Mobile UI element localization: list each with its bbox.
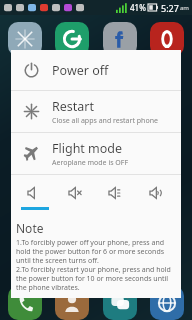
staticText: Restart bbox=[52, 98, 95, 115]
button[interactable]: GRID bbox=[8, 22, 42, 56]
staticText: Note bbox=[16, 220, 44, 236]
staticText: 5:27 bbox=[161, 2, 179, 14]
button[interactable]: F bbox=[103, 22, 137, 56]
staticText: 1.To forcibly power off your phone, pres… bbox=[16, 238, 176, 265]
staticText: Close all apps and restart phone bbox=[52, 116, 158, 126]
button[interactable]: OPERA bbox=[150, 22, 184, 56]
button[interactable]: NORMAL bbox=[15, 175, 55, 210]
button[interactable]: PERSON bbox=[55, 286, 89, 320]
staticText: Power off bbox=[52, 62, 109, 79]
staticText: 2.To forcibly restart your phone, press … bbox=[16, 265, 176, 292]
button[interactable]: Flight mode bbox=[11, 133, 181, 174]
staticText: 41% bbox=[130, 2, 146, 13]
staticText: am bbox=[180, 4, 189, 12]
button[interactable]: G bbox=[55, 22, 89, 56]
staticText: Flight mode bbox=[52, 140, 123, 157]
staticText: Aeroplane mode is OFF bbox=[52, 158, 129, 168]
button[interactable]: GLOBE bbox=[150, 286, 184, 320]
button[interactable]: CHAT bbox=[103, 286, 137, 320]
button[interactable]: Power off bbox=[11, 50, 181, 90]
button[interactable]: SOUND bbox=[137, 175, 177, 207]
button[interactable]: MUTE bbox=[56, 175, 96, 207]
button[interactable]: PHONE bbox=[8, 286, 42, 320]
button[interactable]: VIBRATE bbox=[96, 175, 136, 207]
button[interactable]: Restart bbox=[11, 91, 181, 132]
